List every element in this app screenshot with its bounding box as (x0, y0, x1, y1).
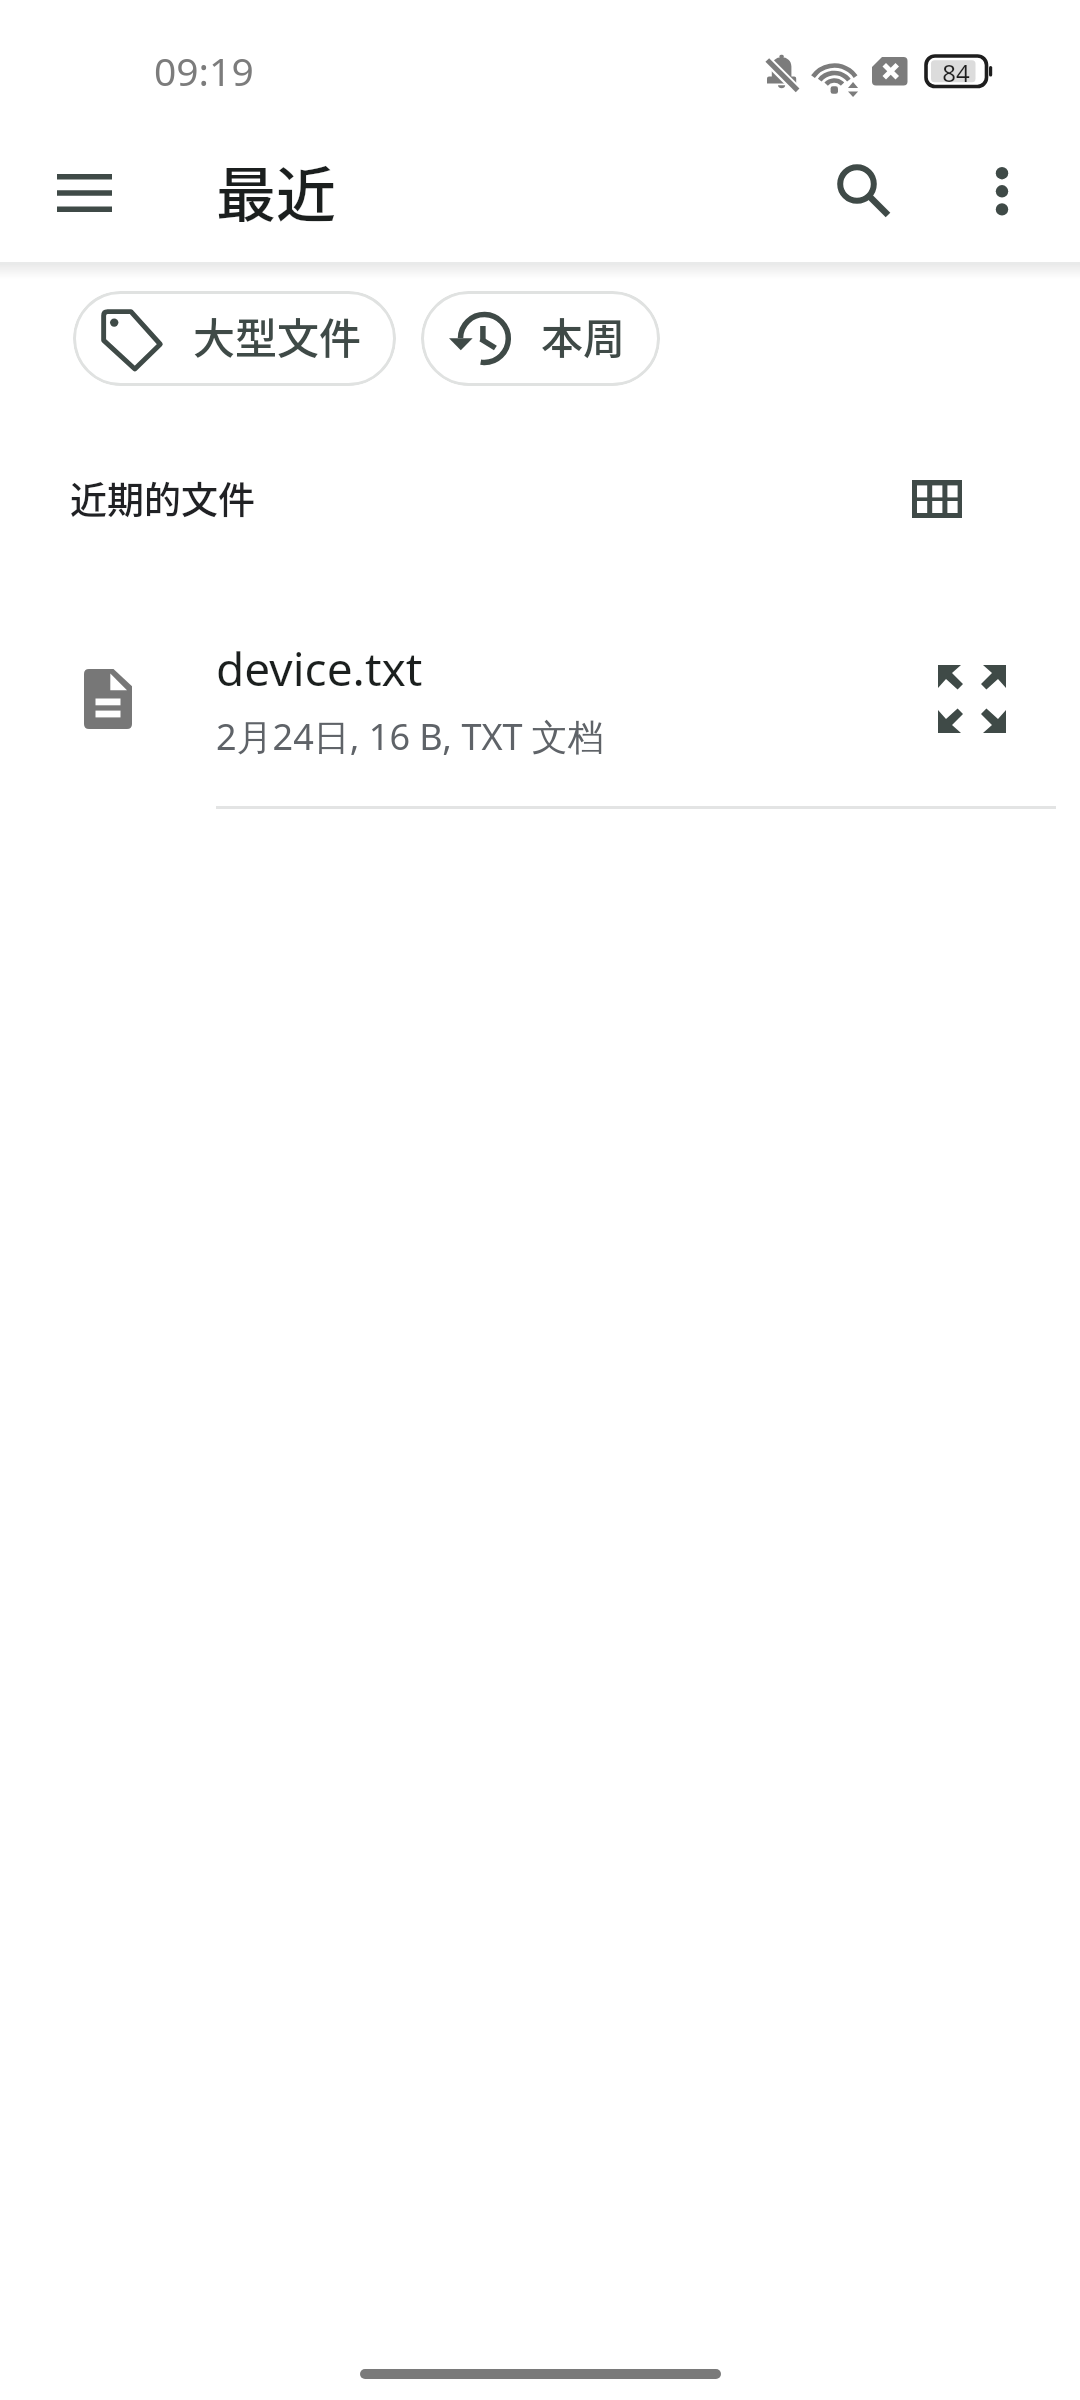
button[interactable]: More options (954, 144, 1050, 240)
staticText: 本周 (541, 305, 626, 366)
button[interactable]: Search (815, 143, 911, 239)
staticText: 大型文件 (193, 305, 362, 366)
staticText: 09:19 (154, 44, 254, 97)
button[interactable]: Open navigation drawer (36, 159, 132, 227)
staticText: 最近 (216, 147, 336, 234)
button[interactable]: device.txt (0, 612, 1080, 807)
button[interactable]: Expand (924, 651, 1020, 747)
staticText: 近期的文件 (70, 471, 255, 525)
button[interactable]: 本周 (421, 291, 660, 386)
button[interactable]: 大型文件 (73, 291, 396, 386)
staticText: device.txt (216, 637, 423, 700)
staticText: 84 (942, 56, 970, 87)
staticText: 2月24日, 16 B, TXT 文档 (216, 712, 604, 761)
button[interactable]: Switch to grid view (889, 451, 985, 547)
